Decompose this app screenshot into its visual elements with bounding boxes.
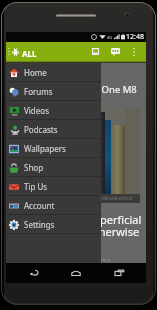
staticText: otherwise: [88, 224, 140, 239]
button[interactable]: More options: [127, 42, 140, 61]
button[interactable]: Comments: [106, 42, 124, 61]
staticText: Wallpapers: [24, 143, 66, 154]
staticText: Tip Us: [24, 181, 48, 192]
button[interactable]: Wallpapers: [6, 139, 101, 158]
staticText: Videos: [24, 105, 49, 116]
staticText: Forums: [24, 86, 53, 97]
staticText: Home: [24, 67, 47, 78]
button[interactable]: Open navigation drawer: [6, 42, 11, 61]
button[interactable]: Back: [19, 263, 49, 283]
staticText: Podcasts: [24, 124, 58, 135]
button[interactable]: Tip Us: [6, 177, 101, 196]
staticText: Account: [24, 200, 55, 211]
staticText: superficial: [88, 212, 142, 227]
button[interactable]: Gallery: [86, 42, 104, 61]
button[interactable]: Account: [6, 196, 101, 215]
staticText: androidcentral: [98, 195, 133, 202]
button[interactable]: Videos: [6, 101, 101, 120]
staticText: 12:48: [126, 32, 144, 42]
button[interactable]: Podcasts: [6, 120, 101, 139]
button[interactable]: Forums: [6, 82, 101, 101]
button[interactable]: Home: [61, 263, 91, 283]
button[interactable]: Recents: [104, 263, 134, 283]
staticText: Shop: [24, 162, 44, 173]
staticText: 4G: [107, 35, 113, 40]
staticText: HTC One M8: [81, 83, 137, 96]
staticText: Settings: [24, 219, 55, 230]
button[interactable]: Settings: [6, 215, 101, 234]
button[interactable]: Home: [6, 63, 101, 82]
staticText: ALL: [22, 48, 37, 59]
staticText: andrea: [90, 256, 110, 264]
button[interactable]: Shop: [6, 158, 101, 177]
